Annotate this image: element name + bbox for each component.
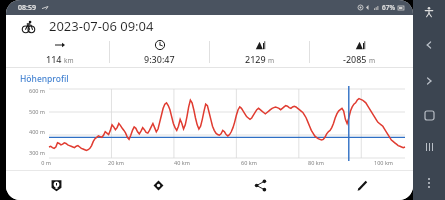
staticText: -2085 — [343, 53, 367, 65]
button[interactable]: Accessibility — [421, 4, 437, 20]
button[interactable]: Forward — [420, 72, 438, 90]
staticText: 500 m — [29, 108, 46, 115]
button[interactable]: Back — [420, 36, 438, 54]
staticText: 0 m — [41, 159, 51, 166]
staticText: 67% — [382, 3, 395, 12]
staticText: m — [268, 56, 275, 65]
staticText: m — [369, 56, 376, 65]
button[interactable]: Home — [420, 106, 438, 124]
staticText: 300 m — [29, 149, 46, 156]
button[interactable]: More options — [420, 174, 438, 192]
button[interactable]: Recents — [420, 138, 438, 156]
button[interactable]: 2129 — [210, 37, 309, 67]
staticText: 9:30:47 — [144, 53, 175, 65]
staticText: 100 km — [374, 159, 393, 166]
staticText: 2023-07-06 09:04 — [49, 17, 154, 35]
button[interactable]: Edit — [311, 170, 413, 200]
staticText: 600 m — [29, 87, 46, 94]
staticText: 08:59 — [18, 3, 36, 13]
button[interactable]: Share — [209, 170, 311, 200]
button[interactable]: -2085 — [310, 37, 409, 67]
button[interactable]: Map — [107, 170, 209, 200]
staticText: 2129 — [245, 53, 266, 65]
staticText: 400 m — [29, 128, 46, 135]
staticText: 114 — [46, 53, 62, 65]
staticText: 20 km — [108, 159, 124, 166]
staticText: 40 km — [174, 159, 190, 166]
button[interactable]: 114 — [10, 37, 109, 67]
button[interactable]: 2023-07-06 09:04 — [6, 15, 413, 37]
staticText: km — [64, 56, 74, 65]
button[interactable]: Statistics — [6, 170, 107, 200]
button[interactable]: 9:30:47 — [110, 37, 209, 67]
staticText: 80 km — [308, 159, 324, 166]
staticText: 60 km — [241, 159, 257, 166]
button[interactable]: Höhenprofil — [20, 73, 69, 85]
